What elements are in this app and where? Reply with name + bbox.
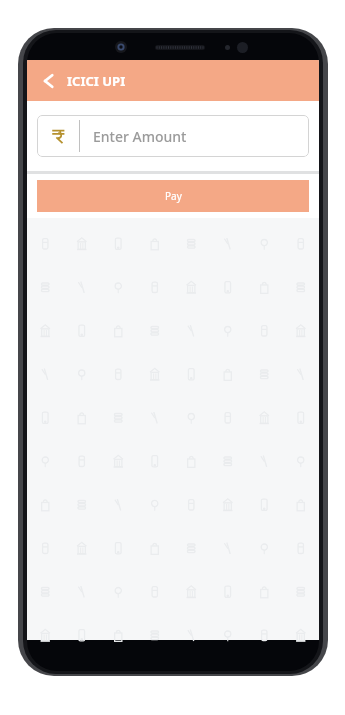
staticText: Enter Amount [93, 127, 187, 146]
staticText: ICICI UPI [67, 72, 126, 90]
staticText: Pay [165, 189, 182, 203]
button[interactable]: Pay [37, 180, 309, 212]
button[interactable]: Enter Amount [37, 115, 309, 157]
button[interactable]: Back [34, 66, 64, 96]
